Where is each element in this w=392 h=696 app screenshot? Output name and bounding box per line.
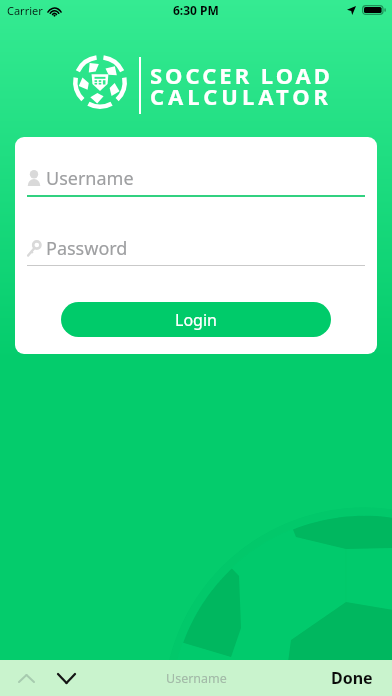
button[interactable]: Next field <box>49 661 83 695</box>
button[interactable]: Done <box>312 661 392 695</box>
staticText: Username <box>46 166 134 191</box>
staticText: 6:30 PM <box>173 2 219 18</box>
button[interactable]: Username <box>27 161 365 195</box>
staticText: SOCCER LOAD <box>150 60 333 90</box>
staticText: CALCULATOR <box>150 81 333 111</box>
staticText: Username <box>166 670 227 687</box>
button[interactable]: Password <box>27 231 365 265</box>
staticText: Done <box>331 667 373 689</box>
button[interactable]: Login <box>61 302 331 337</box>
staticText: Password <box>46 236 128 261</box>
staticText: Login <box>175 309 217 331</box>
staticText: Carrier <box>7 3 43 18</box>
button[interactable]: Previous field <box>9 661 43 695</box>
